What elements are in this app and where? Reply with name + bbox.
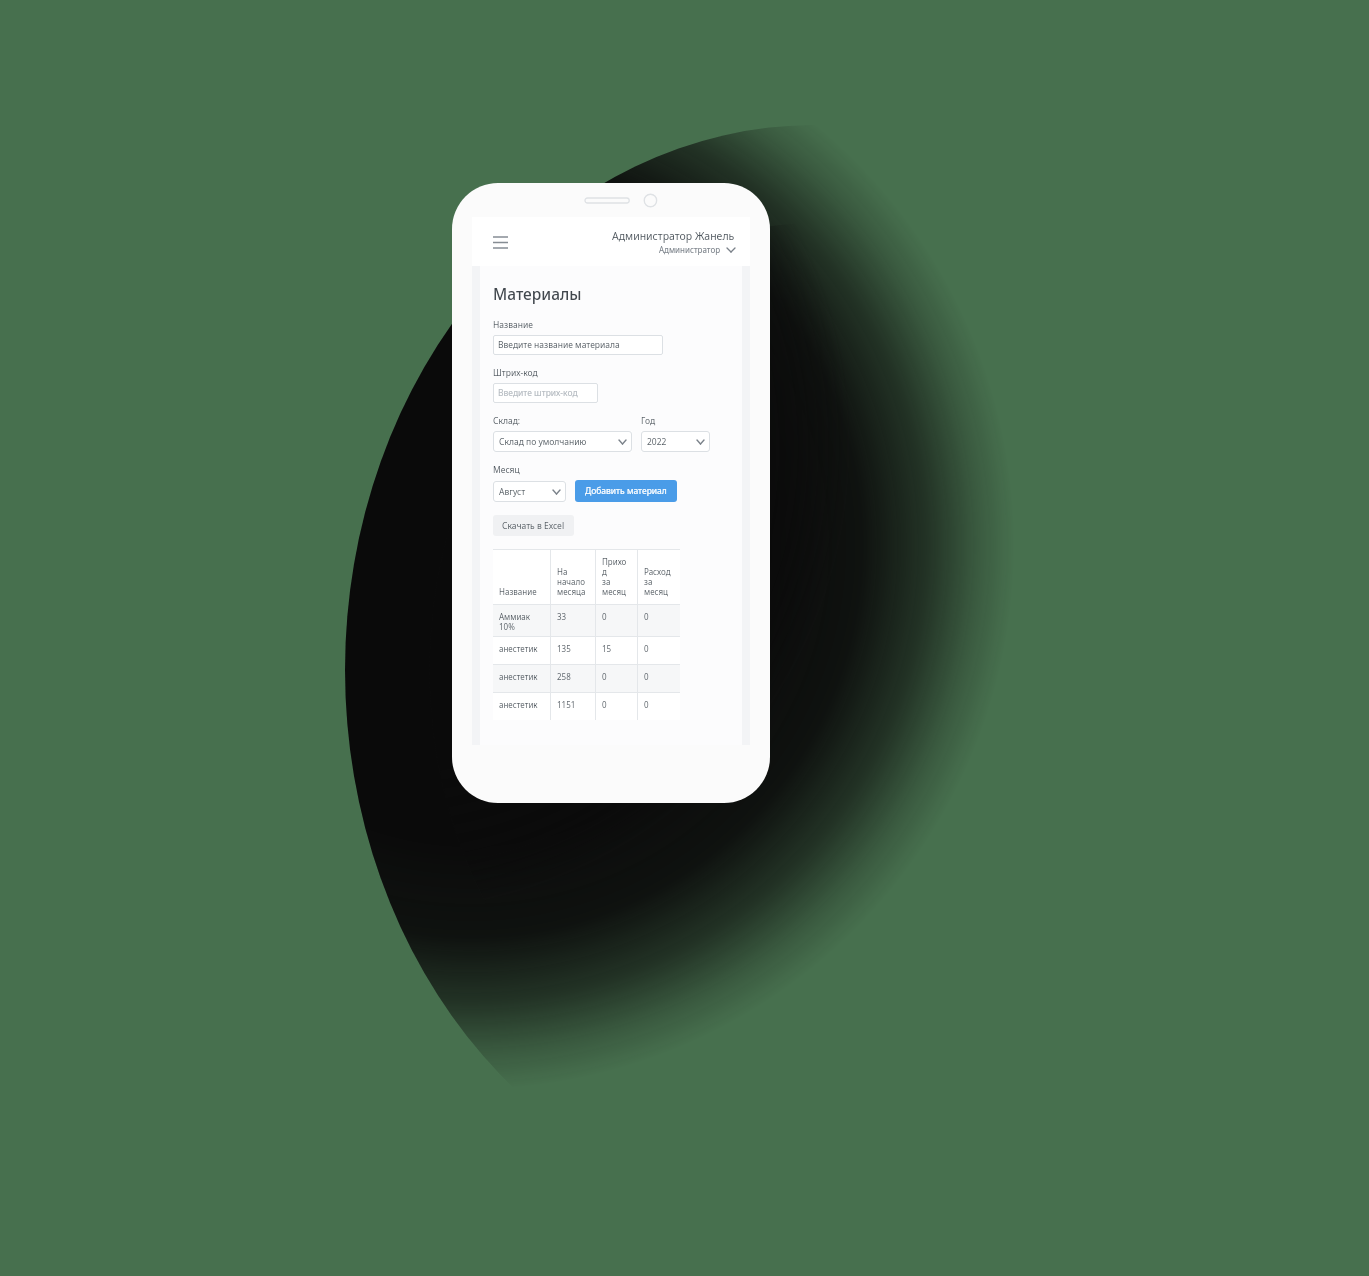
staticText: Добавить материал <box>585 485 667 497</box>
staticText: На начало месяца <box>557 566 586 597</box>
staticText: Администратор <box>659 244 721 255</box>
button[interactable]: анестетик <box>493 665 680 692</box>
staticText: Материалы <box>493 283 582 304</box>
button[interactable]: Склад по умолчанию <box>493 431 632 452</box>
button[interactable]: анестетик <box>493 637 680 664</box>
staticText: Расход за месяц <box>644 566 671 597</box>
staticText: анестетик <box>499 643 538 654</box>
staticText: 0 <box>644 699 649 710</box>
button[interactable]: Август <box>493 481 566 502</box>
staticText: 0 <box>602 699 607 710</box>
button[interactable]: 2022 <box>641 431 710 452</box>
button[interactable]: Введите название материала <box>493 335 663 355</box>
staticText: Название <box>499 586 537 597</box>
staticText: Месяц <box>493 464 520 476</box>
staticText: Скачать в Excel <box>502 520 565 532</box>
staticText: Название <box>493 319 533 331</box>
staticText: 1151 <box>557 699 576 710</box>
staticText: 0 <box>644 671 649 682</box>
staticText: 0 <box>602 611 607 622</box>
staticText: Склад: <box>493 415 521 427</box>
staticText: 0 <box>644 611 649 622</box>
staticText: Штрих-код <box>493 367 538 379</box>
staticText: анестетик <box>499 699 538 710</box>
staticText: Август <box>499 486 526 498</box>
staticText: 0 <box>644 643 649 654</box>
button[interactable]: Администратор Жанель <box>612 229 735 255</box>
staticText: 135 <box>557 643 571 654</box>
staticText: 33 <box>557 611 567 622</box>
staticText: анестетик <box>499 671 538 682</box>
button[interactable]: Введите штрих-код <box>493 383 598 403</box>
staticText: Введите штрих-код <box>498 387 578 399</box>
staticText: Год <box>641 415 656 427</box>
staticText: Склад по умолчанию <box>499 436 587 448</box>
button[interactable]: Добавить материал <box>575 480 677 502</box>
button[interactable]: Скачать в Excel <box>493 515 574 536</box>
button[interactable]: Open navigation menu <box>487 229 513 255</box>
staticText: Аммиак 10% <box>499 611 531 630</box>
staticText: Приход за месяц <box>602 556 631 597</box>
staticText: 15 <box>602 643 612 654</box>
staticText: Администратор Жанель <box>612 229 735 243</box>
button[interactable]: анестетик <box>493 693 680 720</box>
staticText: 258 <box>557 671 571 682</box>
staticText: 0 <box>602 671 607 682</box>
staticText: 2022 <box>647 436 667 448</box>
button[interactable]: Аммиак 10% <box>493 605 680 636</box>
staticText: Введите название материала <box>498 339 620 351</box>
